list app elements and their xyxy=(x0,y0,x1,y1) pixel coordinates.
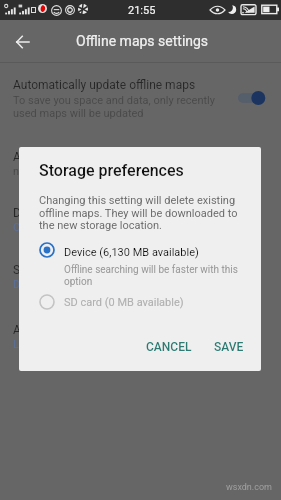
button[interactable]: Back xyxy=(10,30,34,54)
staticText: Auto-delete unused maps xyxy=(13,323,150,337)
staticText: Automatically update offline maps xyxy=(13,150,196,164)
staticText: SAVE xyxy=(214,340,244,354)
button[interactable]: SD card (0 MB available) xyxy=(19,291,261,317)
staticText: Changing this setting will delete existi… xyxy=(39,194,238,231)
staticText: SD card (0 MB available) xyxy=(64,296,184,309)
staticText: Download offline maps over Wi-Fi xyxy=(13,206,191,220)
button[interactable]: Storage preferences xyxy=(0,257,281,309)
button[interactable]: Download offline maps over Wi-Fi xyxy=(0,200,281,252)
staticText: Device (6,130 MB available) xyxy=(13,278,148,291)
button[interactable]: Auto-delete unused maps xyxy=(0,317,281,369)
staticText: Device (6,130 MB available) xyxy=(64,246,199,259)
button[interactable]: SAVE xyxy=(208,335,250,359)
staticText: 21:55 xyxy=(128,4,156,17)
staticText: Location settings xyxy=(13,338,98,351)
button[interactable]: Device (6,130 MB available) xyxy=(19,235,261,279)
staticText: Storage preferences xyxy=(39,161,184,180)
staticText: To save you space and data, only recentl… xyxy=(13,94,215,119)
staticText: Automatically update offline maps xyxy=(13,78,196,92)
staticText: Offline maps settings xyxy=(76,33,209,49)
staticText: CANCEL xyxy=(146,340,192,354)
button[interactable]: Automatically update offline maps xyxy=(0,68,281,124)
button[interactable]: Automatically update offline maps xyxy=(0,144,281,196)
staticText: Storage preferences xyxy=(13,263,121,277)
staticText: wsxdn.com xyxy=(226,482,272,493)
staticText: Offline searching will be faster with th… xyxy=(64,264,238,287)
button[interactable]: CANCEL xyxy=(140,335,198,359)
staticText: needs Wi-Fi xyxy=(13,165,70,178)
staticText: Only over Wi-Fi xyxy=(13,221,86,234)
